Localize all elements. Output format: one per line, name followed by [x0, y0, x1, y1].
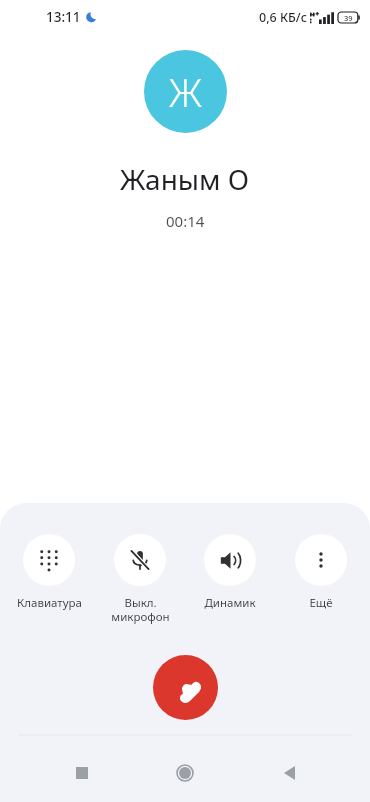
staticText: Динамик	[204, 595, 256, 611]
button[interactable]: Back	[267, 751, 311, 795]
button[interactable]: Speaker	[189, 534, 271, 611]
button[interactable]: Dialpad	[8, 534, 90, 611]
staticText: 13:11	[46, 8, 81, 26]
button[interactable]: Recents	[60, 751, 104, 795]
button[interactable]: More options	[280, 534, 362, 611]
other: Speaker	[219, 549, 242, 572]
staticText: Ж	[169, 66, 202, 118]
staticText: 39	[344, 13, 353, 23]
button[interactable]: Mute microphone	[99, 534, 181, 625]
staticText: 0,6 КБ/с	[259, 9, 307, 26]
button[interactable]: Home	[163, 751, 207, 795]
other: Dialpad	[38, 549, 60, 571]
other: More options	[311, 550, 331, 570]
button[interactable]: End call	[153, 655, 218, 720]
staticText: Выкл. микрофон	[111, 595, 170, 625]
staticText: Клавиатура	[17, 595, 82, 611]
staticText: 00:14	[166, 211, 205, 231]
other: Mute microphone	[128, 548, 152, 572]
staticText: Ещё	[309, 595, 333, 611]
staticText: Жаным О	[120, 160, 250, 198]
